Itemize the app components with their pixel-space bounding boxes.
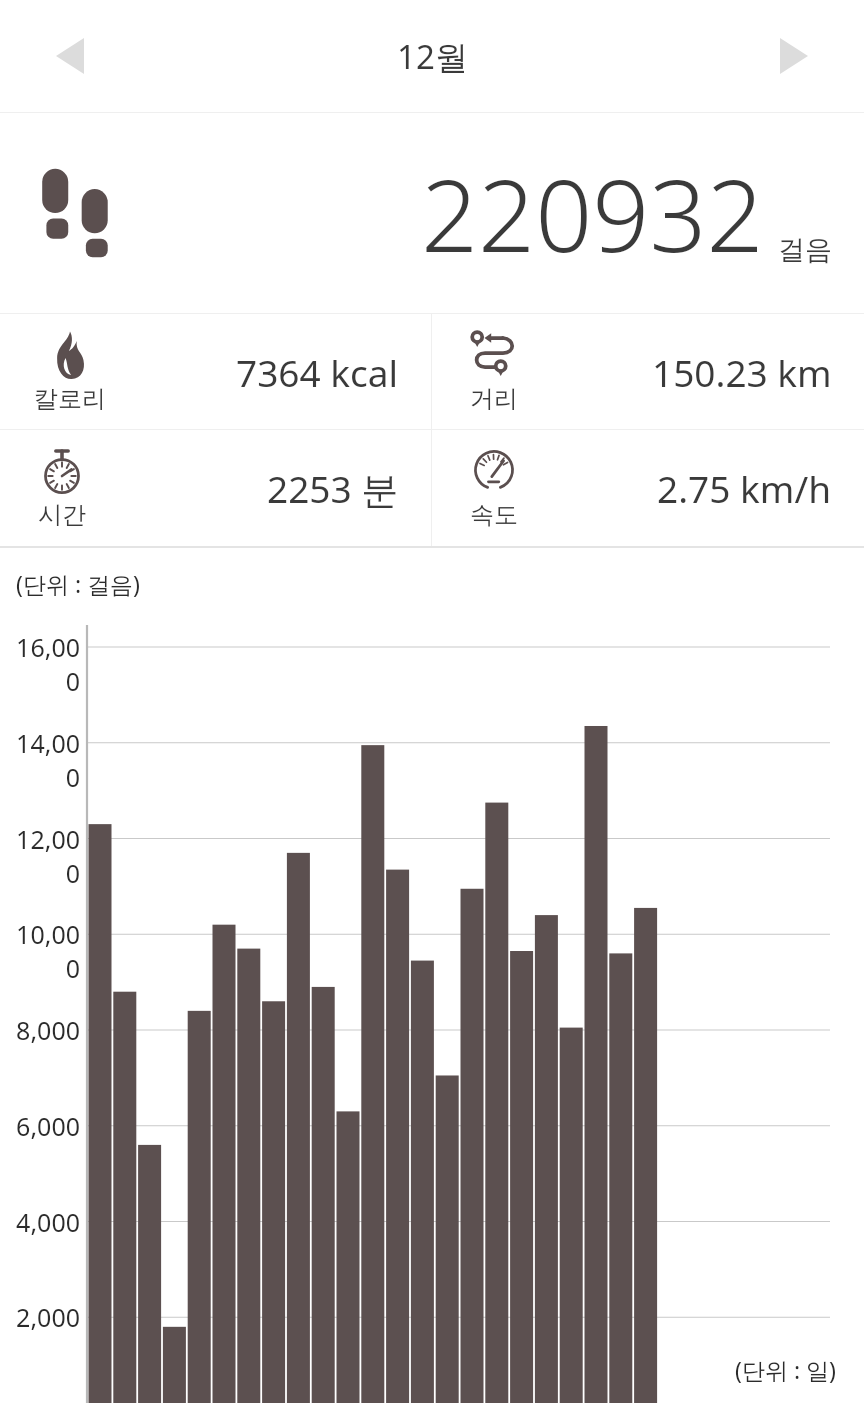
staticText: 거리 [470,384,518,414]
staticText: 10,000 [8,917,80,985]
other: Steps [38,167,122,259]
button[interactable]: 칼로리 [0,314,431,429]
button[interactable]: 시간 [0,430,431,546]
staticText: 220932 [421,145,764,281]
staticText: (단위 : 일) [735,1354,836,1385]
staticText: 4,000 [8,1205,80,1239]
button[interactable]: 거리 [432,314,864,429]
staticText: 16,000 [8,630,80,698]
staticText: 12,000 [8,822,80,890]
staticText: 14,000 [8,726,80,794]
staticText: 6,000 [8,1109,80,1143]
button[interactable]: 속도 [432,430,864,546]
button[interactable]: Next month [746,8,842,104]
staticText: 걸음 [778,233,832,267]
staticText: 2253 분 [267,463,399,514]
staticText: 12월 [397,34,468,79]
staticText: 칼로리 [34,384,106,414]
button[interactable]: Previous month [22,8,118,104]
staticText: 8,000 [8,1013,80,1047]
staticText: 7364 kcal [236,347,399,397]
staticText: 150.23 km [652,347,832,397]
staticText: 2,000 [8,1300,80,1334]
staticText: 시간 [38,500,86,530]
staticText: 2.75 km/h [657,463,832,513]
staticText: 속도 [470,500,518,530]
staticText: (단위 : 걸음) [16,568,140,599]
button[interactable]: Steps [0,113,864,313]
